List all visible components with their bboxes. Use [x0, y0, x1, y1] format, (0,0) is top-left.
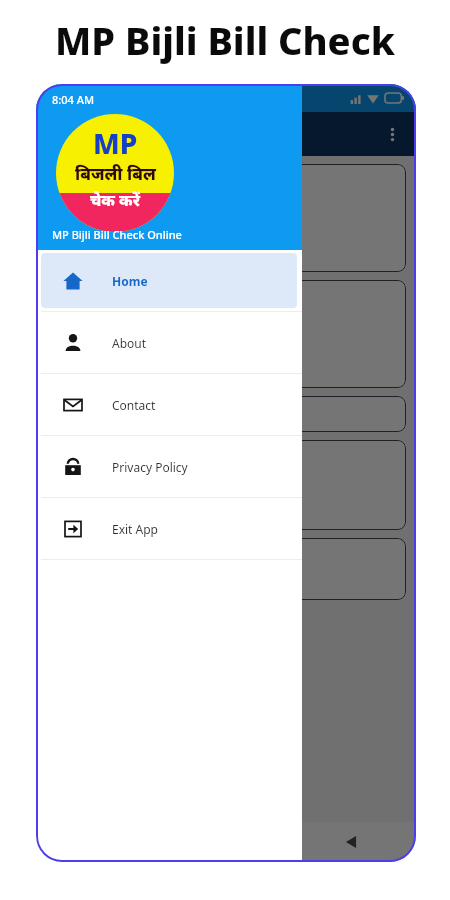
button[interactable]: Back [334, 825, 368, 859]
staticText: 8:04 AM [52, 92, 95, 107]
staticText: शेयर बटन दबाकर इस एप को आगे बढ़ाएं [171, 553, 281, 585]
staticText: Privacy Policy [112, 459, 188, 475]
button[interactable]: Madhya Kshetra-Urban [46, 164, 406, 272]
button[interactable]: Privacy Policy [41, 439, 297, 494]
staticText: About [112, 335, 147, 351]
button[interactable]: Share App [46, 440, 406, 530]
button[interactable]: Enter Number [46, 396, 406, 432]
staticText: Contact [112, 397, 156, 413]
staticText: Enter Number [58, 405, 145, 423]
staticText: चेक करें [90, 189, 140, 211]
staticText: बिजली बिल [75, 162, 156, 185]
button[interactable]: More options [374, 116, 410, 152]
staticText: Madhya Kshetra-Urban [181, 225, 271, 261]
staticText: Exit App [112, 521, 158, 537]
button[interactable]: Exit App [41, 501, 297, 556]
button[interactable]: Contact [41, 377, 297, 432]
button[interactable]: Paschim MPPKVVCL [46, 280, 406, 388]
button[interactable]: About [41, 315, 297, 370]
staticText: Home [112, 273, 148, 289]
staticText: MP Bijli Bill Check Online [52, 227, 182, 242]
staticText: MP [93, 124, 138, 162]
button[interactable]: Home [41, 253, 297, 308]
staticText: MP Bijli Bill Check [55, 14, 395, 66]
